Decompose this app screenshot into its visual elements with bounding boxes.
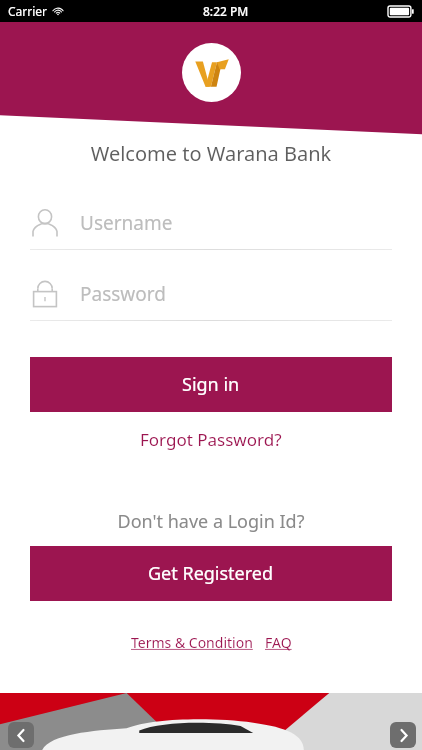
staticText: Password <box>80 281 166 307</box>
staticText: Sign in <box>182 372 240 397</box>
button[interactable]: Terms & Condition <box>131 633 253 652</box>
button[interactable]: Next banner <box>390 722 416 748</box>
button[interactable]: Previous banner <box>8 722 34 748</box>
staticText: Don't have a Login Id? <box>0 509 422 534</box>
staticText: 8:22 PM <box>203 3 249 19</box>
staticText: Carrier <box>8 3 48 19</box>
button[interactable]: Sign in <box>30 357 392 412</box>
staticText: Terms & Condition <box>131 633 253 652</box>
button[interactable]: Forgot Password? <box>0 428 422 451</box>
button[interactable]: Get Registered <box>30 546 392 601</box>
button[interactable]: Password <box>30 268 392 320</box>
staticText: Username <box>80 210 173 236</box>
button[interactable]: FAQ <box>265 633 292 652</box>
button[interactable]: Username <box>30 197 392 249</box>
staticText: FAQ <box>265 633 292 652</box>
staticText: Get Registered <box>148 561 274 586</box>
staticText: Forgot Password? <box>140 428 282 451</box>
staticText: Welcome to Warana Bank <box>0 140 422 167</box>
